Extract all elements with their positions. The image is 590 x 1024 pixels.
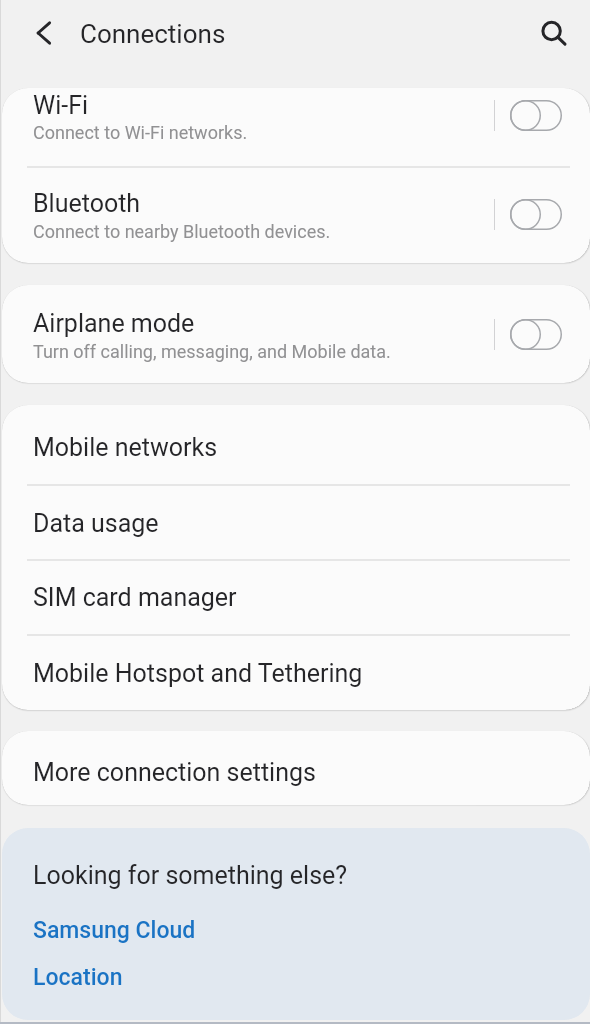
button[interactable] [2, 559, 590, 634]
staticText: Wi-Fi [33, 91, 89, 120]
button[interactable] [2, 954, 590, 1000]
button[interactable] [2, 731, 590, 805]
button[interactable]: Toggle Bluetooth [498, 185, 574, 243]
button[interactable] [2, 634, 590, 710]
staticText: Turn off calling, messaging, and Mobile … [33, 341, 391, 362]
staticText: Samsung Cloud [33, 917, 196, 944]
button[interactable]: Toggle Airplane mode [498, 305, 574, 363]
staticText: Airplane mode [33, 309, 195, 338]
button[interactable] [2, 484, 590, 559]
button[interactable] [2, 285, 590, 383]
button[interactable] [2, 906, 590, 952]
staticText: Mobile networks [33, 433, 218, 462]
staticText: Connections [80, 19, 226, 49]
button[interactable] [2, 405, 590, 484]
button[interactable]: Toggle Wi-Fi [498, 88, 574, 144]
staticText: Mobile Hotspot and Tethering [33, 659, 363, 688]
button[interactable]: Back [16, 9, 62, 55]
staticText: Data usage [33, 509, 159, 538]
staticText: Connect to Wi-Fi networks. [33, 122, 248, 143]
button[interactable]: Search [527, 6, 579, 58]
staticText: Bluetooth [33, 189, 141, 218]
button[interactable] [2, 88, 590, 166]
staticText: SIM card manager [33, 583, 237, 612]
staticText: Looking for something else? [33, 861, 348, 890]
staticText: Location [33, 964, 123, 991]
staticText: More connection settings [33, 758, 316, 787]
button[interactable] [2, 166, 590, 261]
staticText: Connect to nearby Bluetooth devices. [33, 221, 331, 242]
